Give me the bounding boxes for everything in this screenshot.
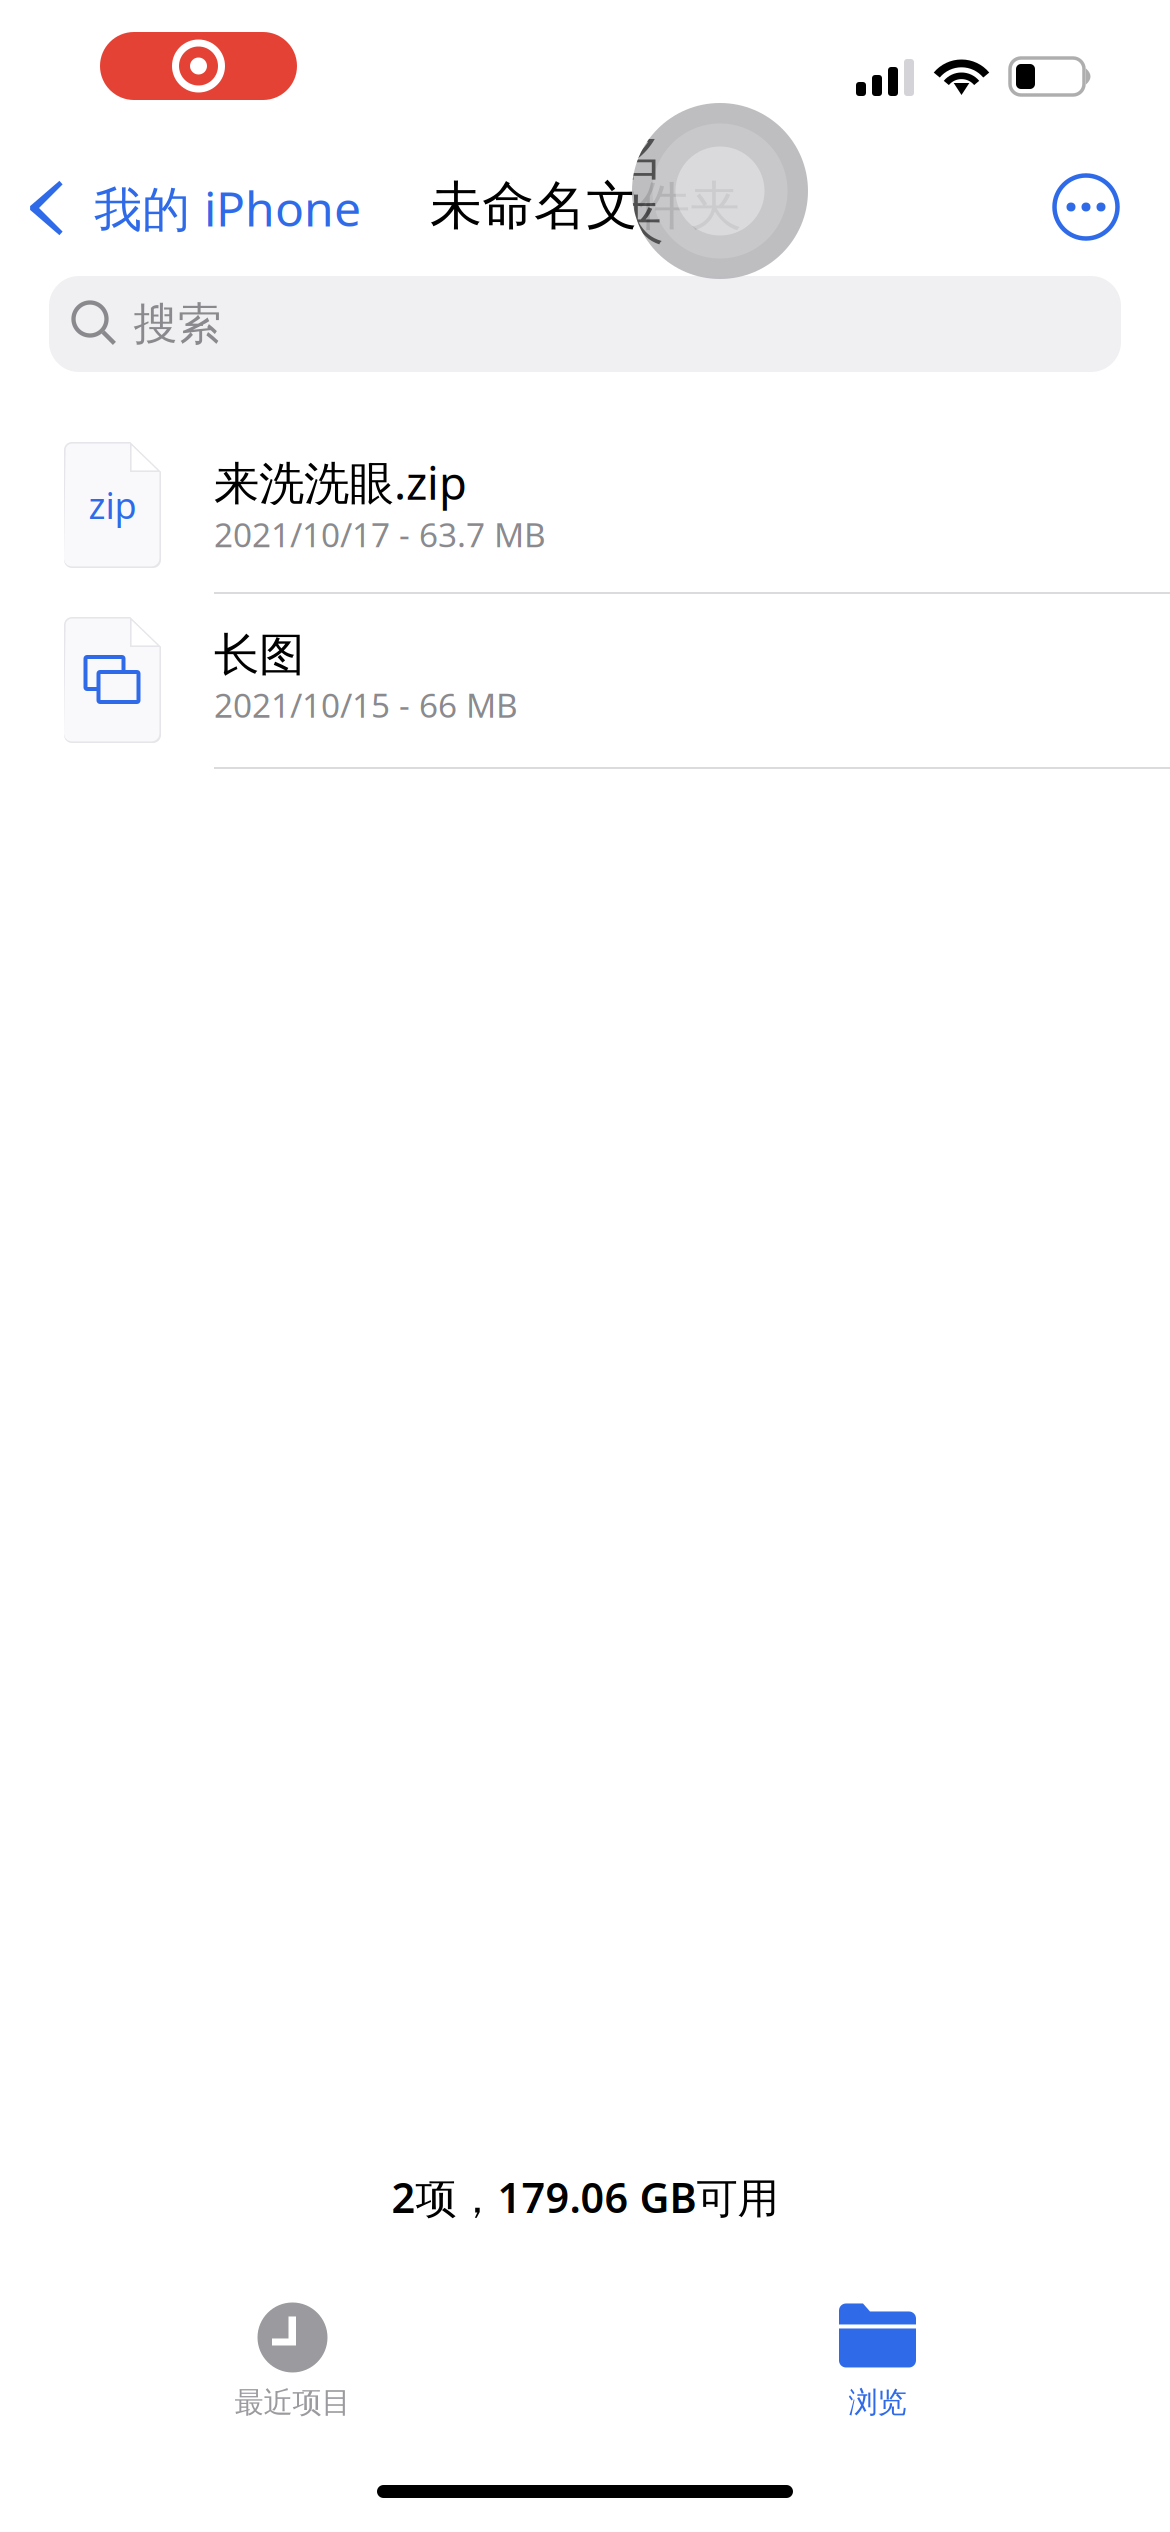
staticText: zip [88,481,136,529]
staticText: 2021/10/17 - 63.7 MB [214,512,546,556]
button[interactable]: 浏览 [585,2279,1170,2439]
staticText: 来洗洗眼.zip [214,452,467,512]
button[interactable]: 搜索 [49,276,1121,372]
staticText: 长图 [214,627,304,683]
staticText: 未命名文件夹 [430,174,742,238]
button[interactable]: 长图 [0,597,1170,772]
staticText: 2项，179.06 GB可用 [391,2170,778,2224]
staticText: 2021/10/15 - 66 MB [214,683,518,727]
button[interactable]: 最近项目 [0,2279,585,2439]
staticText: 我的 iPhone [94,176,361,240]
button[interactable]: zip [0,422,1170,597]
staticText: 搜索 [133,297,221,351]
button[interactable]: 我的 iPhone [0,160,420,256]
staticText: 最近项目 [234,2384,350,2420]
staticText: 未命名文件夹 [508,124,664,252]
staticText: 浏览 [848,2384,906,2420]
button[interactable]: 更多 [1038,159,1134,255]
